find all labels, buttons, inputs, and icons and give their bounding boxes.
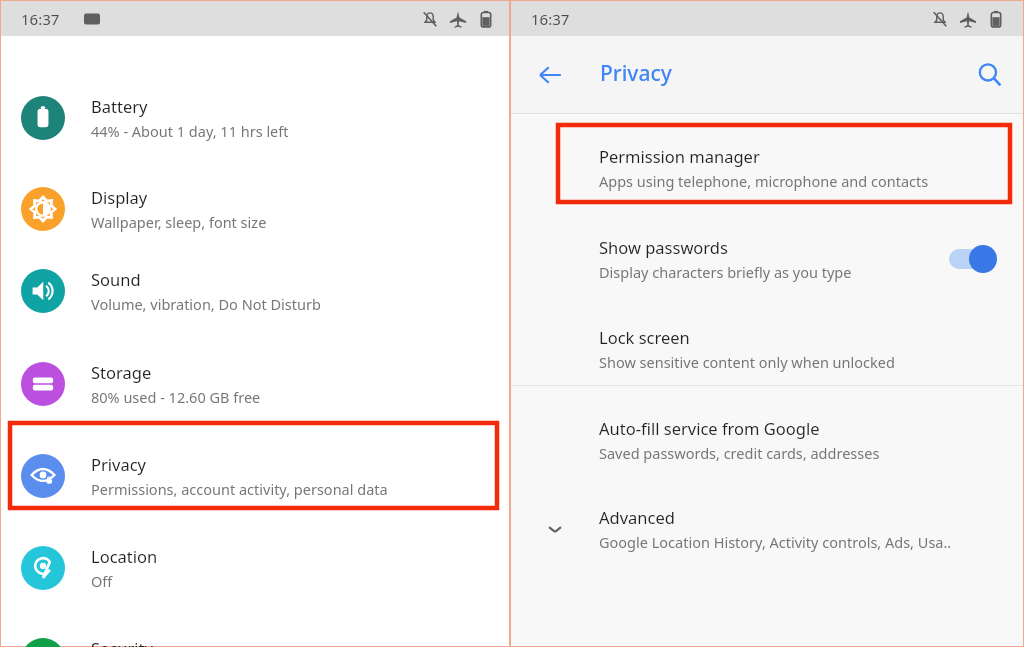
staticText: Security (91, 637, 153, 647)
staticText: 80% used - 12.60 GB free (91, 387, 261, 407)
button[interactable]: Advanced (511, 493, 1023, 565)
staticText: 16:37 (21, 9, 60, 29)
staticText: Off (91, 571, 113, 591)
staticText: Show sensitive content only when unlocke… (599, 352, 895, 372)
staticText: Google Location History, Activity contro… (599, 532, 952, 552)
staticText: Auto-fill service from Google (599, 417, 820, 439)
staticText: Permission manager (599, 145, 760, 167)
staticText: Wallpaper, sleep, font size (91, 212, 267, 232)
button[interactable]: Display (1, 163, 509, 254)
staticText: Volume, vibration, Do Not Disturb (91, 294, 321, 314)
staticText: 16:37 (531, 9, 570, 29)
button[interactable]: Show passwords toggle (949, 239, 1001, 279)
staticText: Apps using telephone, microphone and con… (599, 171, 929, 191)
staticText: Location (91, 545, 158, 567)
staticText: Battery (91, 95, 148, 117)
button[interactable]: Show passwords (511, 223, 1023, 295)
staticText: Display (91, 186, 148, 208)
button[interactable]: Back (529, 54, 571, 96)
button[interactable]: Sound (1, 245, 509, 336)
staticText: Lock screen (599, 326, 690, 348)
button[interactable]: Location (1, 522, 509, 613)
staticText: Advanced (599, 506, 675, 528)
staticText: Sound (91, 268, 141, 290)
button[interactable]: Search (969, 54, 1011, 96)
button[interactable]: Auto-fill service from Google (511, 404, 1023, 476)
button[interactable]: Lock screen (511, 313, 1023, 385)
staticText: Permissions, account activity, personal … (91, 479, 388, 499)
staticText: Privacy (600, 59, 672, 88)
button[interactable]: Permission manager (511, 132, 1023, 204)
staticText: 44% - About 1 day, 11 hrs left (91, 121, 289, 141)
button[interactable]: Privacy (1, 430, 509, 521)
button[interactable]: Storage (1, 338, 509, 429)
button[interactable]: Battery (1, 72, 509, 163)
staticText: Storage (91, 361, 152, 383)
staticText: Display characters briefly as you type (599, 262, 852, 282)
staticText: Show passwords (599, 236, 728, 258)
button[interactable]: Security (1, 614, 509, 647)
staticText: Privacy (91, 453, 147, 475)
staticText: Saved passwords, credit cards, addresses (599, 443, 880, 463)
